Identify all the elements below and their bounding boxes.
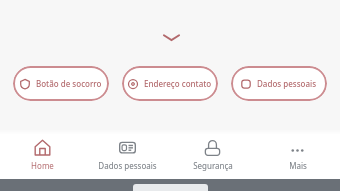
staticText: Endereço contato (144, 78, 212, 89)
button[interactable]: Endereço contato (122, 66, 218, 101)
button[interactable]: Botão de socorro (13, 66, 109, 101)
staticText: Dados pessoais (257, 78, 317, 89)
staticText: Mais (289, 160, 307, 171)
button[interactable]: Dados pessoais (231, 66, 327, 101)
staticText: Dados pessoais (98, 160, 157, 171)
staticText: Segurança (193, 160, 233, 171)
button[interactable]: Dados pessoais (85, 135, 170, 179)
staticText: Botão de socorro (36, 78, 102, 89)
button[interactable]: Segurança (170, 135, 255, 179)
button[interactable]: Mais (255, 135, 340, 179)
staticText: Home (31, 160, 54, 171)
button[interactable]: Recolher (158, 24, 184, 50)
button[interactable]: Home (0, 135, 85, 179)
